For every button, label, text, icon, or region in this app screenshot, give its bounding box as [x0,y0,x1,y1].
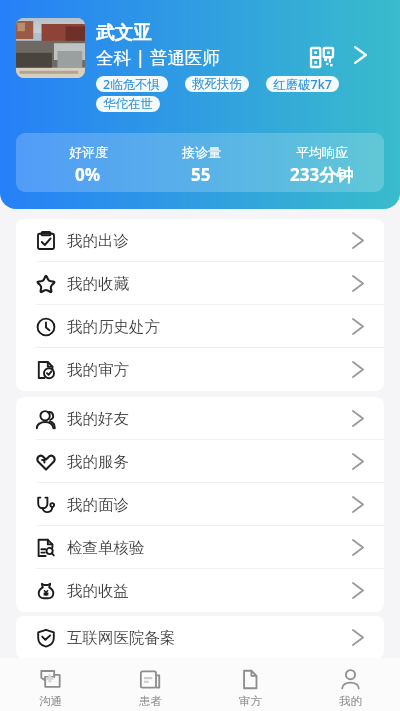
staticText: 2临危不惧 [103,76,161,92]
staticText: 红磨破7k7 [273,76,332,92]
button[interactable]: 我的服务 [16,440,384,483]
staticText: 我的历史处方 [67,317,160,337]
staticText: 我的 [339,694,362,708]
staticText: 我的收藏 [67,274,129,294]
staticText: 全科 | 普通医师 [96,45,220,69]
button[interactable]: 我的 [300,658,400,711]
staticText: 审方 [239,694,262,708]
staticText: 好评度 [69,144,108,160]
button[interactable]: 检查单核验 [16,526,384,569]
staticText: 我的好友 [67,409,129,429]
button[interactable]: 我的收益 [16,569,384,612]
staticText: 我的收益 [67,581,129,601]
staticText: 接诊量 [182,144,221,160]
button[interactable]: 我的审方 [16,348,384,391]
staticText: 患者 [139,694,162,708]
button[interactable]: 互联网医院备案 [16,616,384,659]
staticText: 0% [75,163,101,186]
button[interactable]: 我的好友 [16,397,384,440]
button[interactable]: 我的历史处方 [16,305,384,348]
staticText: 互联网医院备案 [67,628,176,648]
button[interactable]: Avatar [16,18,85,78]
staticText: 我的服务 [67,452,129,472]
staticText: 55 [191,163,211,186]
staticText: 沟通 [39,694,62,708]
staticText: 检查单核验 [67,538,145,558]
button[interactable]: 沟通 [0,658,100,711]
staticText: 救死扶伤 [192,76,242,92]
button[interactable]: 我的收藏 [16,262,384,305]
button[interactable]: 患者 [100,658,200,711]
button[interactable]: 我的出诊 [16,219,384,262]
button[interactable]: 审方 [200,658,300,711]
button[interactable]: 我的面诊 [16,483,384,526]
staticText: 武文亚 [96,21,152,44]
staticText: 华佗在世 [103,96,153,112]
button[interactable]: 好评度 [16,133,384,192]
button[interactable]: Profile details [345,40,375,70]
staticText: 我的审方 [67,360,129,380]
staticText: 我的出诊 [67,231,129,251]
staticText: 平均响应 [296,144,348,160]
staticText: 我的面诊 [67,495,129,515]
button[interactable]: QR code [306,41,338,73]
staticText: 233分钟 [290,163,354,186]
